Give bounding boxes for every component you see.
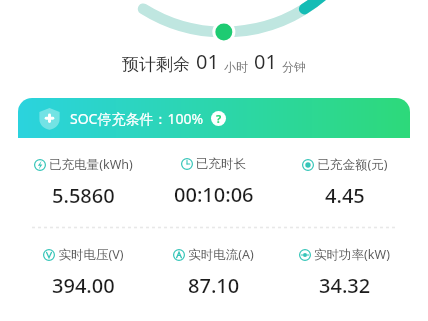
button[interactable]: 已充金额(元) [279,156,410,209]
button[interactable]: 实时功率(kW) [279,246,410,299]
staticText: 5.5860 [52,182,115,209]
staticText: 分钟 [282,59,306,74]
staticText: 87.10 [188,272,240,299]
staticText: 已充金额(元) [317,156,388,173]
staticText: 实时功率(kW) [314,246,390,263]
other: Protection [38,107,61,130]
button[interactable]: Help about SOC stop condition [211,111,226,126]
staticText: 4.45 [325,182,365,209]
staticText: 实时电压(V) [58,246,124,263]
button[interactable]: 实时电压(V) [18,246,148,299]
staticText: 已充时长 [196,156,246,172]
staticText: 预计剩余 [122,54,190,75]
button[interactable]: 已充电量(kWh) [18,156,148,209]
button[interactable]: 实时电流(A) [148,246,279,299]
staticText: 34.32 [319,272,371,299]
staticText: 01 [196,48,219,75]
staticText: 01 [254,48,277,75]
button[interactable]: Protection [18,98,410,138]
staticText: 小时 [224,59,248,74]
staticText: ? [216,111,222,126]
staticText: 实时电流(A) [188,246,254,263]
staticText: 394.00 [52,272,115,299]
button[interactable]: 已充时长 [148,156,279,208]
staticText: 已充电量(kWh) [49,156,133,173]
staticText: 00:10:06 [174,181,254,208]
staticText: SOC停充条件：100% [70,109,204,128]
